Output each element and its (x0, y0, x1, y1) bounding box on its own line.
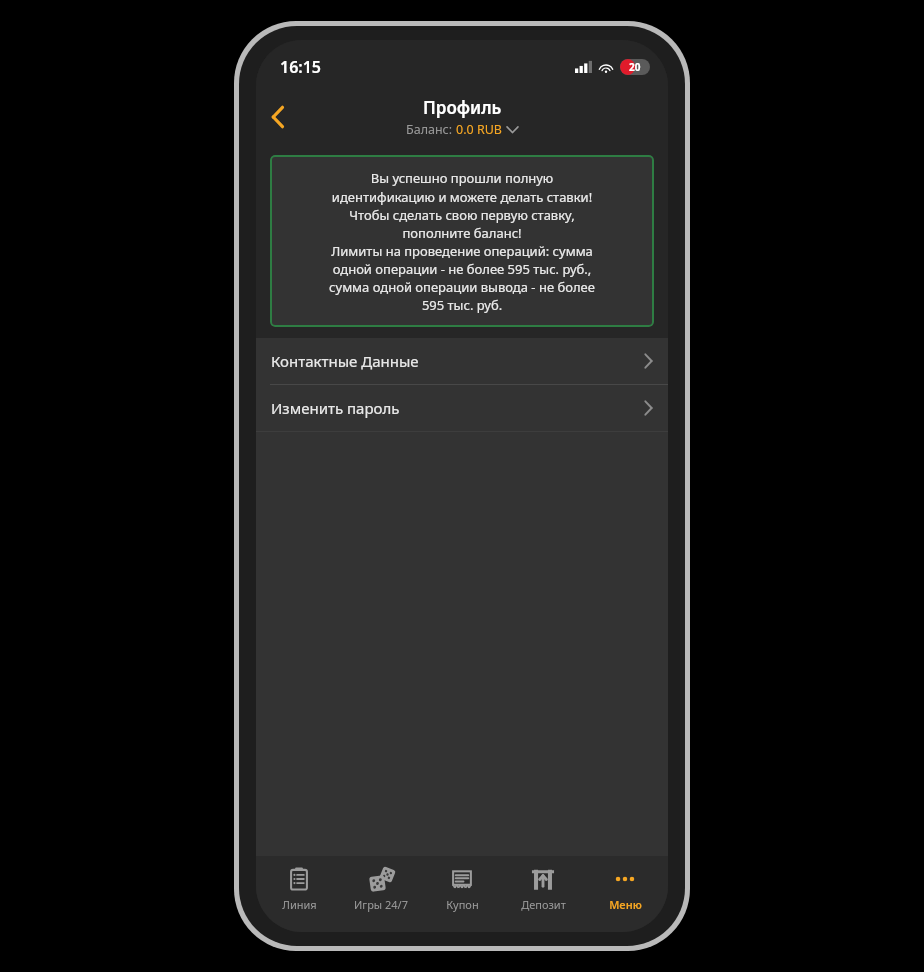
staticText: Контактные Данные (271, 351, 419, 371)
button[interactable]: Линия (261, 856, 337, 932)
button[interactable]: Депозит (505, 856, 581, 932)
staticText: Профиль (423, 96, 502, 119)
button[interactable]: Игры 24/7 (343, 856, 419, 932)
staticText: Линия (282, 897, 317, 912)
button[interactable]: Баланс: (406, 121, 518, 138)
button[interactable]: Изменить пароль (256, 385, 668, 431)
staticText: Баланс: (406, 121, 456, 138)
staticText: Меню (609, 897, 642, 912)
button[interactable]: Купон (424, 856, 500, 932)
staticText: Изменить пароль (271, 398, 400, 418)
button[interactable]: Меню (587, 856, 663, 932)
staticText: 0.0 RUB (456, 121, 502, 138)
staticText: Вы успешно прошли полную идентификацию и… (280, 169, 644, 313)
staticText: Игры 24/7 (354, 897, 408, 912)
staticText: Депозит (521, 897, 566, 912)
staticText: 20 (629, 60, 641, 74)
button[interactable]: Контактные Данные (256, 338, 668, 384)
button[interactable]: Назад (256, 95, 300, 139)
staticText: Купон (446, 897, 479, 912)
staticText: 16:15 (280, 56, 322, 78)
